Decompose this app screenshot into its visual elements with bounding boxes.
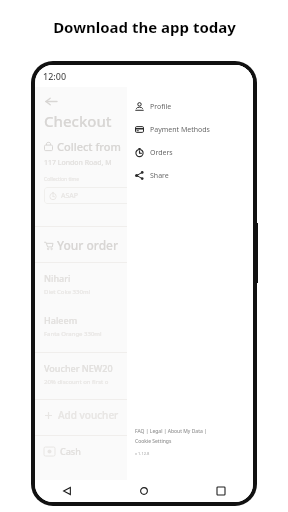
- staticText: 20% discount on first o: [44, 378, 109, 386]
- staticText: Profile: [150, 102, 172, 112]
- button[interactable]: FAQ | Legal | About My Data |: [135, 428, 207, 435]
- staticText: Checkout: [44, 111, 112, 131]
- button[interactable]: Cookie Settings: [135, 438, 172, 445]
- staticText: ASAP: [61, 191, 79, 201]
- button[interactable]: Share: [127, 164, 253, 187]
- staticText: Nihari: [44, 272, 71, 284]
- button[interactable]: Payment Methods: [127, 118, 253, 141]
- button[interactable]: ASAP: [44, 187, 244, 204]
- staticText: Your order: [57, 237, 119, 253]
- staticText: Voucher NEW20: [44, 362, 113, 374]
- staticText: Haleem: [44, 314, 78, 326]
- staticText: 12:00: [43, 70, 67, 82]
- staticText: Share: [150, 171, 169, 181]
- button[interactable]: Add voucher: [35, 408, 253, 422]
- staticText: Add voucher: [58, 408, 119, 422]
- button[interactable]: Home: [136, 483, 152, 499]
- staticText: Collect from: [57, 139, 121, 154]
- button[interactable]: Orders: [127, 141, 253, 164]
- button[interactable]: Profile: [127, 95, 253, 118]
- staticText: Download the app today: [53, 17, 236, 37]
- staticText: Cash: [60, 445, 81, 457]
- button[interactable]: Back: [43, 93, 59, 109]
- staticText: Payment Methods: [150, 125, 210, 135]
- button[interactable]: Back: [59, 483, 75, 499]
- button[interactable]: Recents: [213, 483, 229, 499]
- staticText: 117 London Road, M: [44, 158, 112, 168]
- staticText: Orders: [150, 148, 173, 158]
- button[interactable]: Cash: [35, 445, 253, 457]
- staticText: Collection time: [44, 176, 80, 183]
- staticText: Diet Coke 330ml: [44, 288, 91, 296]
- staticText: Fanta Orange 330ml: [44, 330, 102, 338]
- staticText: v 1.12.8: [135, 451, 150, 456]
